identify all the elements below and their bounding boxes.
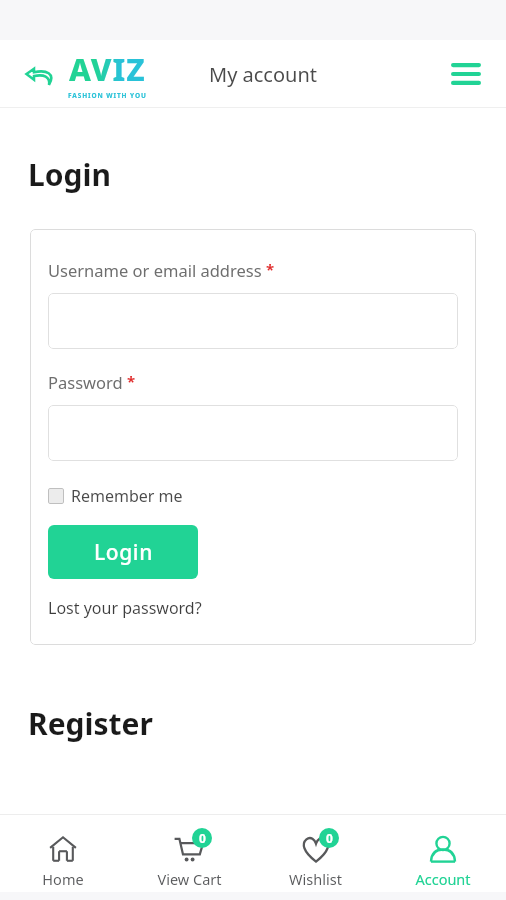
button[interactable]: Remember me: [48, 485, 183, 507]
staticText: FASHION WITH YOU: [68, 91, 147, 100]
button[interactable]: [48, 293, 458, 349]
staticText: Home: [42, 869, 84, 889]
staticText: 0: [199, 830, 206, 846]
staticText: Login: [28, 154, 111, 195]
button[interactable]: AVIZ: [68, 48, 147, 100]
staticText: Wishlist: [289, 869, 342, 889]
staticText: View Cart: [157, 869, 222, 889]
staticText: 0: [326, 830, 333, 846]
staticText: Remember me: [71, 485, 183, 507]
button[interactable]: Home: [0, 820, 126, 900]
staticText: Password: [48, 371, 123, 393]
staticText: Username or email address: [48, 259, 262, 281]
button[interactable]: Account: [379, 820, 506, 900]
staticText: *: [127, 371, 136, 391]
staticText: Register: [28, 703, 153, 744]
staticText: AVIZ: [69, 48, 146, 90]
button[interactable]: Lost your password?: [48, 597, 202, 619]
button[interactable]: Menu: [444, 52, 488, 96]
button[interactable]: Back: [20, 54, 60, 94]
staticText: *: [266, 259, 275, 279]
staticText: My account: [209, 61, 317, 88]
button[interactable]: 0: [252, 820, 379, 900]
button[interactable]: Login: [48, 525, 198, 579]
staticText: Login: [94, 538, 153, 567]
button[interactable]: 0: [126, 820, 252, 900]
staticText: Account: [415, 869, 471, 889]
button[interactable]: [48, 405, 458, 461]
